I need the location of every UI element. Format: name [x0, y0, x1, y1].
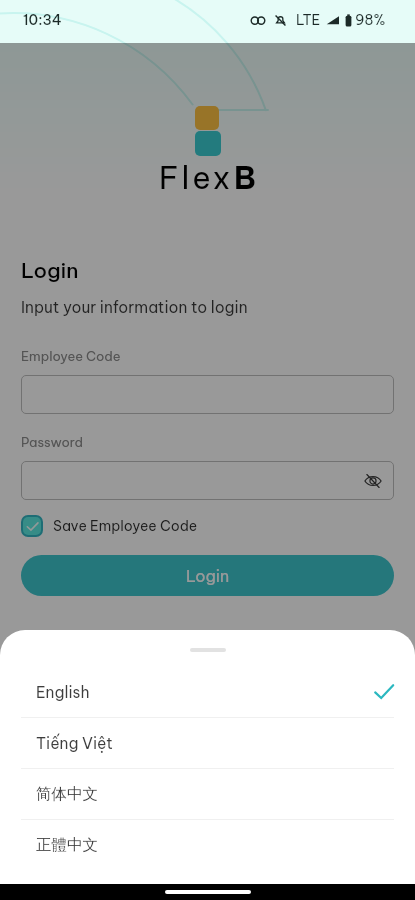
staticText: 简体中文: [36, 784, 98, 804]
staticText: Login: [21, 257, 79, 284]
staticText: 正體中文: [36, 835, 98, 855]
staticText: 98%: [355, 11, 386, 29]
staticText: 10:34: [23, 11, 62, 29]
button[interactable]: [21, 375, 394, 414]
staticText: LTE: [296, 11, 321, 29]
button[interactable]: Login: [21, 555, 394, 596]
staticText: Employee Code: [21, 348, 121, 364]
staticText: Tiếng Việt: [36, 733, 113, 753]
staticText: Password: [21, 434, 83, 450]
button[interactable]: Tiếng Việt: [0, 718, 415, 768]
staticText: Input your information to login: [21, 297, 248, 317]
staticText: Flex: [159, 158, 234, 197]
button[interactable]: 简体中文: [0, 769, 415, 819]
button[interactable]: Save Employee Code: [21, 515, 198, 537]
button[interactable]: 正體中文: [0, 820, 415, 870]
staticText: Login: [186, 566, 230, 586]
staticText: Save Employee Code: [53, 517, 198, 535]
staticText: B: [234, 158, 256, 197]
button[interactable]: English: [0, 667, 415, 717]
button[interactable]: Toggle password visibility: [364, 472, 382, 490]
staticText: English: [36, 682, 90, 702]
button[interactable]: Toggle password visibility: [21, 461, 394, 500]
